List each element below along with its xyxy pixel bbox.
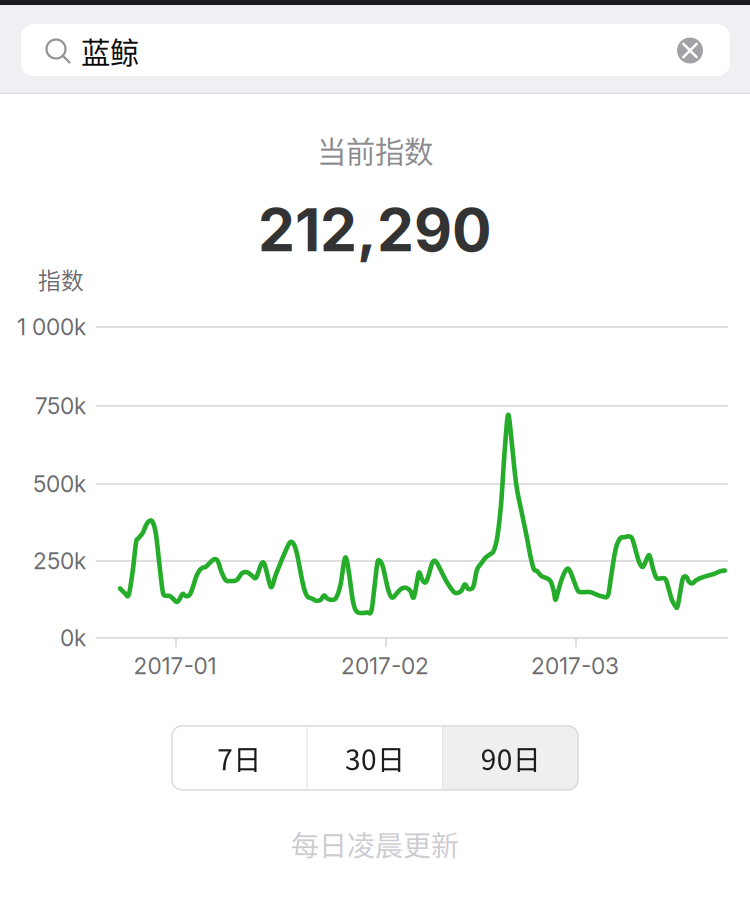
staticText: 2017-01 bbox=[133, 652, 216, 680]
staticText: 7日 bbox=[217, 738, 261, 778]
staticText: 30日 bbox=[345, 738, 405, 778]
staticText: 2017-03 bbox=[531, 652, 619, 680]
button[interactable]: 90日 bbox=[443, 726, 578, 790]
button[interactable]: 7日 bbox=[172, 726, 307, 790]
staticText: 每日凌晨更新 bbox=[291, 824, 459, 864]
staticText: 250k bbox=[33, 547, 86, 575]
staticText: 90日 bbox=[481, 738, 541, 778]
staticText: 212,290 bbox=[258, 194, 492, 265]
staticText: 指数 bbox=[38, 263, 84, 295]
button[interactable]: 蓝鲸 bbox=[21, 24, 730, 76]
staticText: 蓝鲸 bbox=[81, 30, 139, 72]
staticText: 1 000k bbox=[17, 313, 86, 341]
staticText: 0k bbox=[60, 624, 86, 652]
staticText: 500k bbox=[33, 470, 86, 498]
staticText: 750k bbox=[35, 392, 86, 420]
button[interactable]: 30日 bbox=[308, 726, 442, 790]
staticText: 2017-02 bbox=[341, 652, 429, 680]
staticText: 当前指数 bbox=[317, 129, 433, 171]
